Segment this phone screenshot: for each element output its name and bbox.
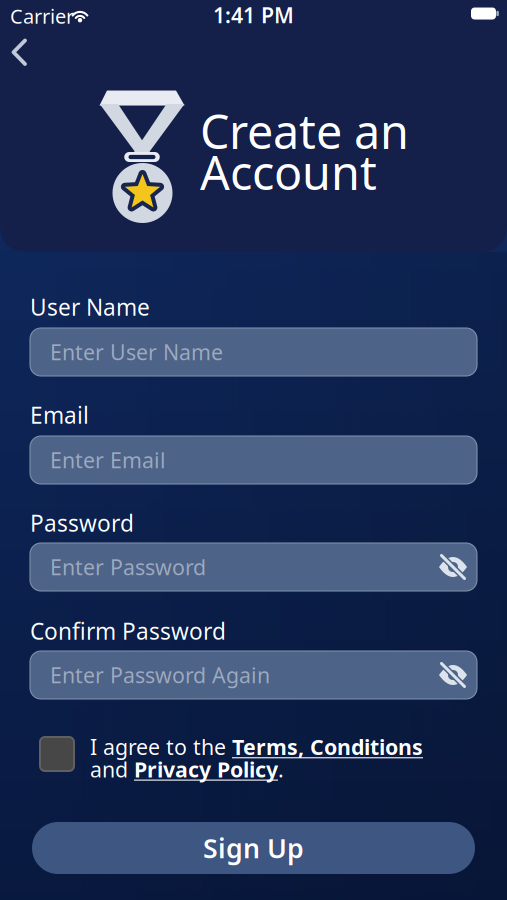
- staticText: Carrier: [10, 3, 74, 29]
- staticText: and Privacy Policy.: [90, 755, 284, 783]
- staticText: Account: [200, 141, 377, 203]
- staticText: 1:41 PM: [213, 1, 294, 29]
- staticText: Confirm Password: [30, 616, 226, 646]
- staticText: Enter Password: [50, 553, 206, 581]
- button[interactable]: Enter Password: [30, 543, 477, 591]
- staticText: Enter Email: [50, 446, 166, 474]
- button[interactable]: Enter User Name: [30, 328, 477, 376]
- button[interactable]: Enter Password Again: [30, 651, 477, 699]
- staticText: Password: [30, 508, 134, 538]
- staticText: Create an: [200, 100, 409, 162]
- staticText: Enter Password Again: [50, 661, 270, 689]
- staticText: Sign Up: [203, 830, 304, 866]
- staticText: Email: [30, 400, 89, 430]
- button[interactable]: I agree to the Terms, Conditions: [90, 733, 470, 783]
- button[interactable]: [0, 30, 43, 74]
- staticText: I agree to the Terms, Conditions: [90, 733, 423, 761]
- staticText: User Name: [30, 292, 150, 322]
- button[interactable]: Enter Email: [30, 436, 477, 484]
- staticText: Enter User Name: [50, 338, 223, 366]
- button[interactable]: [40, 737, 74, 771]
- button[interactable]: Sign Up: [32, 822, 475, 874]
